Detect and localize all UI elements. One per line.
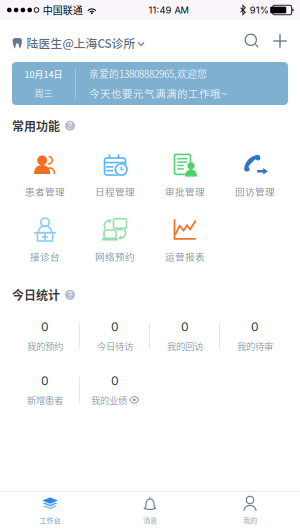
button[interactable]: 审批管理 bbox=[150, 154, 220, 198]
staticText: 中国联通 bbox=[43, 3, 83, 17]
staticText: 0 bbox=[181, 320, 189, 334]
staticText: 我的待审 bbox=[237, 339, 273, 353]
button[interactable]: 0 bbox=[10, 320, 80, 353]
button[interactable]: 0 bbox=[80, 374, 150, 407]
staticText: 0 bbox=[111, 374, 119, 388]
staticText: 陆医生@上海CS诊所 bbox=[27, 34, 136, 51]
staticText: 我的预约 bbox=[27, 339, 63, 353]
staticText: 今日待访 bbox=[97, 339, 133, 353]
staticText: 我的业绩 bbox=[91, 393, 127, 407]
button[interactable]: 回访管理 bbox=[220, 154, 290, 198]
staticText: 新增患者 bbox=[27, 393, 63, 407]
button[interactable]: 日程管理 bbox=[80, 154, 150, 198]
staticText: 今天也要元气满满的工作哦~ bbox=[89, 85, 227, 101]
staticText: 今日统计 bbox=[12, 286, 60, 304]
button[interactable]: 接诊台 bbox=[10, 219, 80, 263]
staticText: 10月14日 bbox=[24, 67, 62, 80]
button[interactable]: Search bbox=[238, 25, 266, 57]
staticText: 0 bbox=[41, 374, 49, 388]
button[interactable]: 陆医生@上海CS诊所 bbox=[0, 23, 145, 58]
button[interactable]: 0 bbox=[80, 320, 150, 353]
staticText: 消息 bbox=[143, 515, 157, 525]
staticText: 日程管理 bbox=[95, 184, 135, 198]
staticText: 回访管理 bbox=[235, 184, 275, 198]
staticText: 患者管理 bbox=[25, 184, 65, 198]
staticText: 我的 bbox=[243, 515, 257, 525]
button[interactable]: 0 bbox=[220, 320, 290, 353]
staticText: 91% bbox=[250, 4, 269, 16]
button[interactable]: 消息 bbox=[100, 492, 200, 530]
button[interactable]: 患者管理 bbox=[10, 154, 80, 198]
button[interactable]: 0 bbox=[150, 320, 220, 353]
staticText: 11:49 AM bbox=[148, 4, 188, 16]
staticText: 我的回访 bbox=[167, 339, 203, 353]
staticText: 运营报表 bbox=[165, 249, 205, 263]
staticText: ? bbox=[67, 120, 72, 131]
staticText: 审批管理 bbox=[165, 184, 205, 198]
staticText: 0 bbox=[251, 320, 259, 334]
button[interactable]: 0 bbox=[10, 374, 80, 407]
staticText: 0 bbox=[111, 320, 119, 334]
staticText: ? bbox=[67, 289, 72, 300]
staticText: 0 bbox=[41, 320, 49, 334]
staticText: 亲爱的13808882965,欢迎您 bbox=[89, 66, 207, 80]
button[interactable]: 运营报表 bbox=[150, 219, 220, 263]
staticText: 接诊台 bbox=[30, 249, 60, 263]
staticText: 常用功能 bbox=[12, 117, 60, 134]
button[interactable]: 我的 bbox=[200, 492, 300, 530]
staticText: 网络预约 bbox=[95, 249, 135, 263]
button[interactable]: 网络预约 bbox=[80, 219, 150, 263]
button[interactable]: 工作台 bbox=[0, 492, 100, 530]
button[interactable]: Add bbox=[266, 25, 300, 57]
staticText: 工作台 bbox=[39, 515, 60, 525]
staticText: 周三 bbox=[34, 86, 52, 100]
